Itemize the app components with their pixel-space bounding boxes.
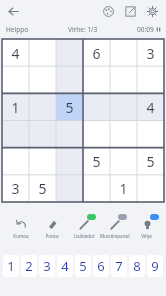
button[interactable] — [2, 67, 29, 94]
staticText: 3 — [43, 257, 51, 275]
button[interactable] — [2, 148, 29, 175]
staticText: 00:09 — [137, 25, 154, 34]
button[interactable] — [137, 67, 164, 94]
button[interactable]: 3 — [2, 175, 29, 202]
button[interactable] — [137, 121, 164, 148]
button[interactable]: 3 — [39, 255, 55, 277]
button[interactable]: 1 — [3, 255, 19, 277]
button[interactable]: Back — [4, 2, 22, 20]
staticText: 5 — [65, 98, 74, 117]
button[interactable]: 7 — [111, 255, 127, 277]
button[interactable] — [110, 39, 137, 67]
button[interactable]: 8 — [129, 255, 145, 277]
staticText: 1 — [7, 257, 15, 275]
button[interactable]: 4 — [57, 255, 73, 277]
button[interactable]: 1 — [110, 175, 137, 202]
staticText: 1 — [11, 98, 20, 117]
button[interactable] — [56, 39, 83, 67]
staticText: 6 — [97, 257, 105, 275]
button[interactable]: Lisätiedot — [68, 215, 99, 239]
staticText: 6 — [92, 44, 101, 63]
button[interactable] — [56, 175, 83, 202]
staticText: 8 — [133, 257, 141, 275]
button[interactable]: Kumoa — [5, 215, 36, 239]
staticText: 2 — [25, 257, 33, 275]
button[interactable]: 5 — [83, 148, 110, 175]
button[interactable]: 6 — [93, 255, 109, 277]
staticText: Kumoa — [13, 233, 29, 239]
button[interactable] — [29, 39, 56, 67]
button[interactable]: 5 — [137, 148, 164, 175]
staticText: 4 — [146, 98, 155, 117]
button[interactable]: 6 — [83, 39, 110, 67]
button[interactable] — [83, 67, 110, 94]
button[interactable]: 5 — [29, 175, 56, 202]
button[interactable]: Muistiinpanot — [99, 215, 130, 239]
button[interactable]: 1 — [2, 94, 29, 121]
button[interactable] — [29, 121, 56, 148]
button[interactable] — [110, 148, 137, 175]
button[interactable] — [137, 175, 164, 202]
staticText: 7 — [115, 257, 123, 275]
button[interactable] — [110, 67, 137, 94]
button[interactable]: Vihje — [131, 215, 162, 239]
button[interactable] — [56, 121, 83, 148]
staticText: 9 — [151, 257, 159, 275]
button[interactable]: 4 — [2, 39, 29, 67]
button[interactable] — [29, 67, 56, 94]
staticText: 3 — [146, 44, 155, 63]
staticText: 5 — [146, 152, 155, 171]
button[interactable]: 00:09 — [137, 25, 161, 34]
button[interactable] — [29, 94, 56, 121]
staticText: 5 — [79, 257, 87, 275]
button[interactable] — [83, 121, 110, 148]
button[interactable] — [110, 94, 137, 121]
button[interactable]: 5 — [56, 94, 83, 121]
staticText: 4 — [11, 44, 20, 63]
staticText: Vihje — [141, 233, 152, 239]
button[interactable] — [83, 94, 110, 121]
staticText: 1 — [119, 179, 128, 198]
staticText: 3 — [11, 179, 20, 198]
button[interactable]: Share — [122, 3, 139, 20]
staticText: Lisätiedot — [73, 233, 95, 239]
staticText: Virhe: 1/3 — [68, 25, 98, 34]
button[interactable] — [56, 67, 83, 94]
button[interactable]: Theme — [100, 3, 117, 20]
staticText: Helppo — [6, 25, 29, 34]
other: Pause — [156, 27, 161, 32]
button[interactable]: 5 — [75, 255, 91, 277]
button[interactable]: 9 — [147, 255, 163, 277]
button[interactable]: Poista — [36, 215, 67, 239]
button[interactable] — [83, 175, 110, 202]
button[interactable] — [56, 148, 83, 175]
staticText: Poista — [45, 233, 59, 239]
staticText: 4 — [61, 257, 69, 275]
button[interactable] — [2, 121, 29, 148]
button[interactable]: Settings — [144, 3, 161, 20]
button[interactable]: 3 — [137, 39, 164, 67]
button[interactable]: 4 — [137, 94, 164, 121]
button[interactable] — [110, 121, 137, 148]
staticText: 5 — [38, 179, 47, 198]
button[interactable]: 2 — [21, 255, 37, 277]
button[interactable] — [29, 148, 56, 175]
staticText: Muistiinpanot — [100, 233, 130, 239]
staticText: 5 — [92, 152, 101, 171]
